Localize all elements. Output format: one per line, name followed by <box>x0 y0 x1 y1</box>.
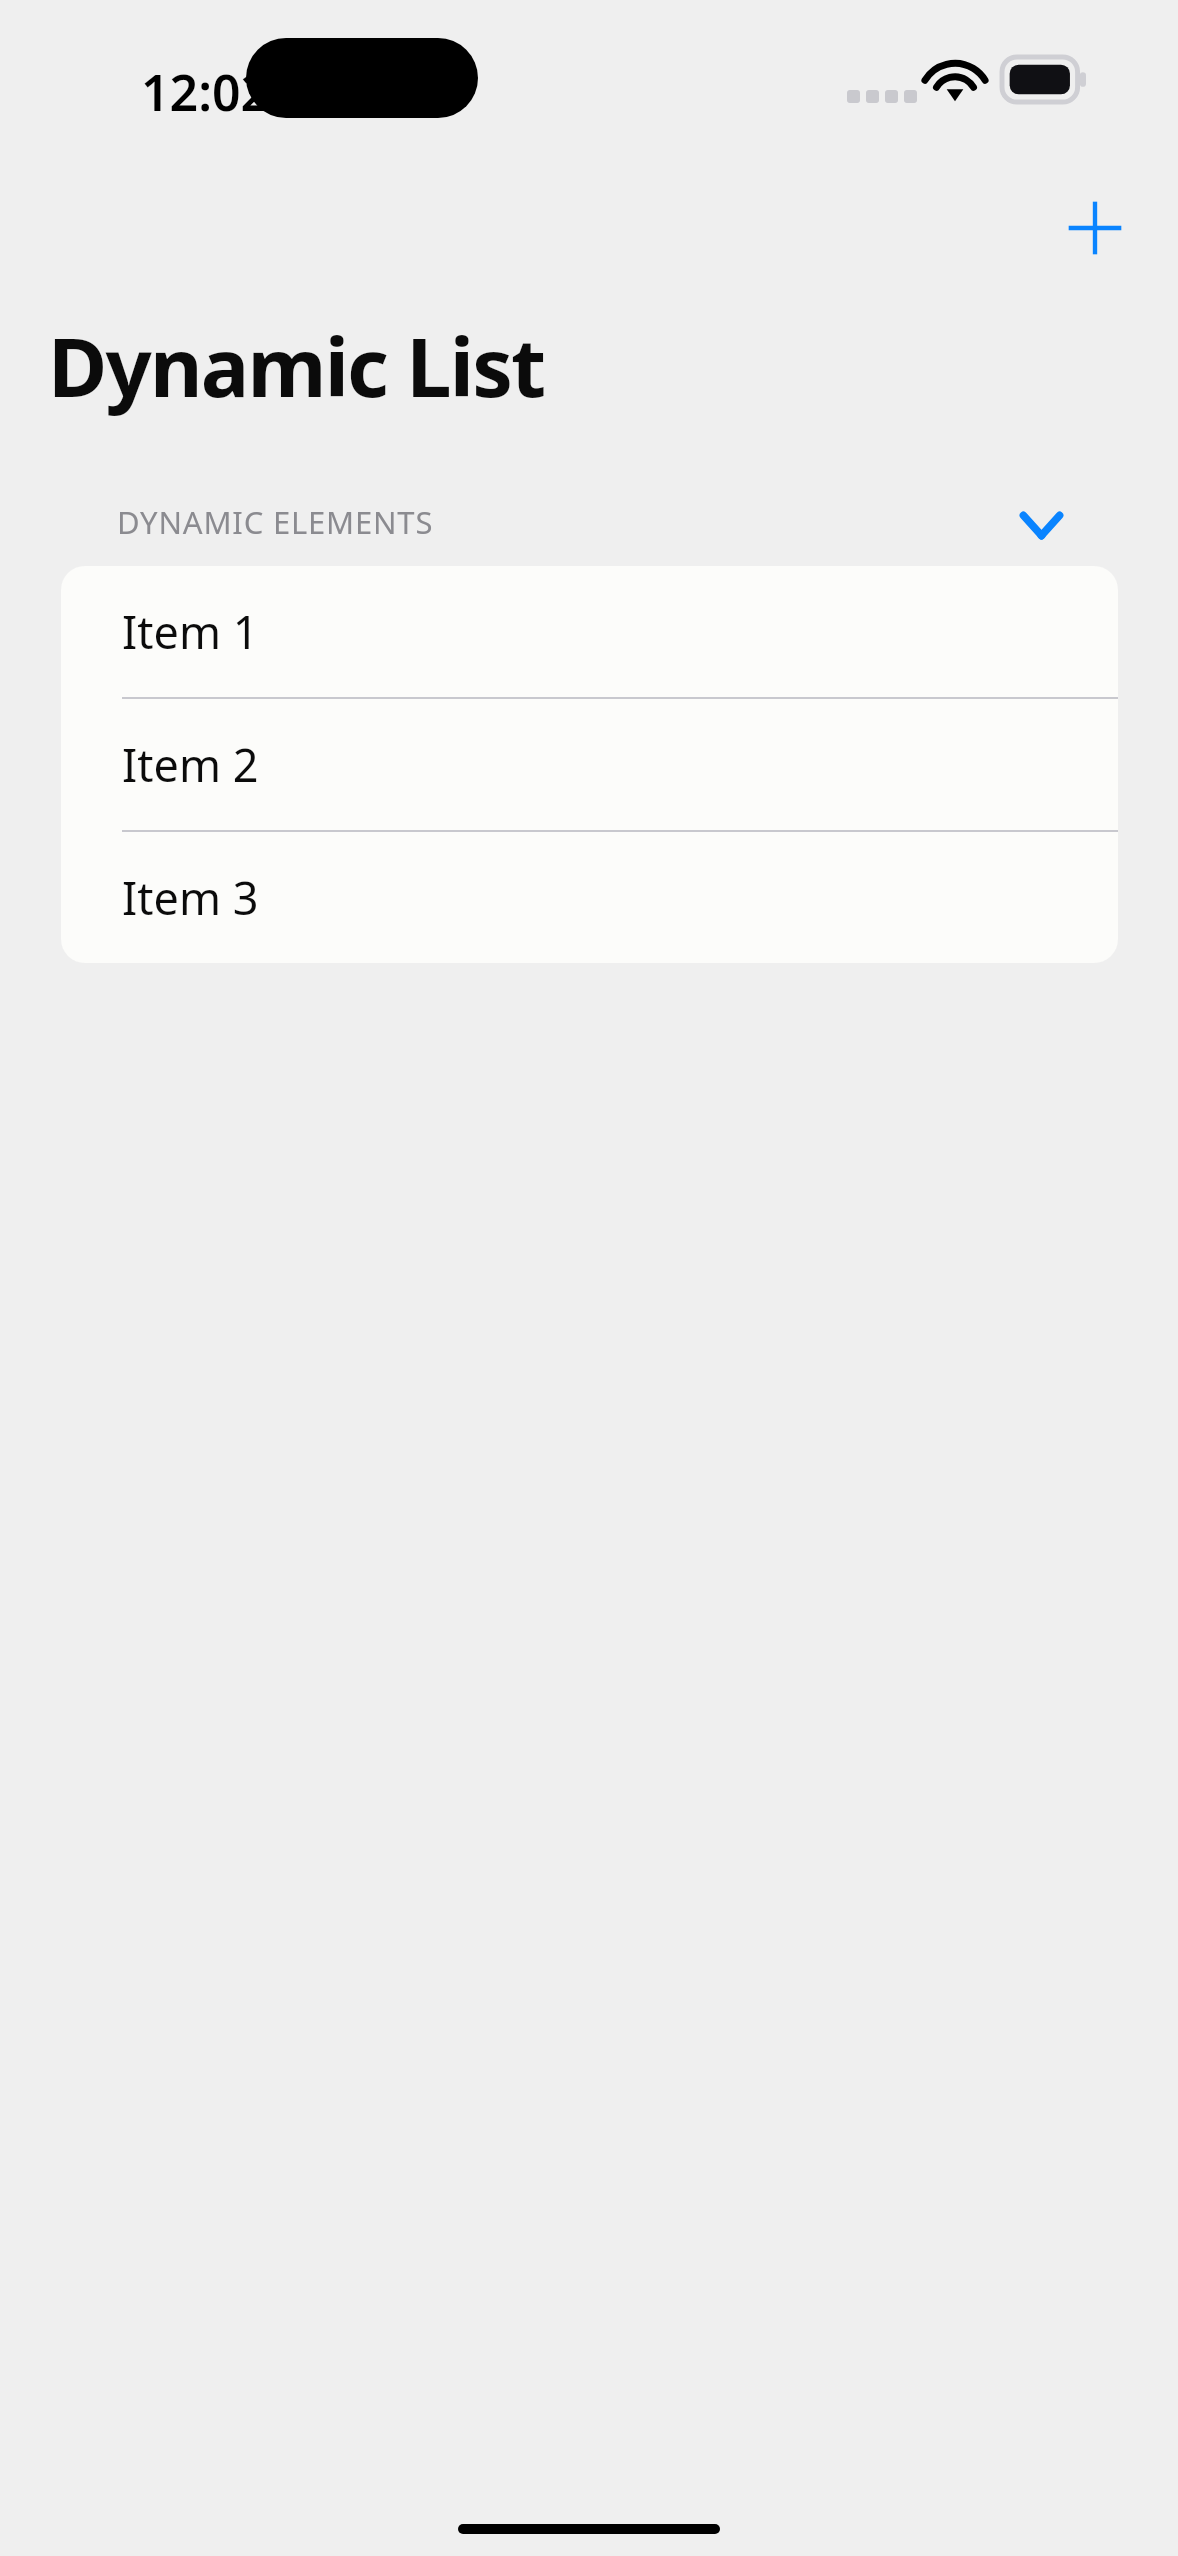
button[interactable]: Add item <box>1035 168 1155 288</box>
button[interactable]: Item 1 <box>61 566 1118 697</box>
button[interactable]: Item 2 <box>61 699 1118 830</box>
staticText: Item 1 <box>122 601 259 662</box>
staticText: DYNAMIC ELEMENTS <box>117 501 434 543</box>
staticText: Item 3 <box>122 867 259 928</box>
staticText: Dynamic List <box>48 310 545 420</box>
button[interactable]: Item 3 <box>61 832 1118 963</box>
staticText: Item 2 <box>122 734 259 795</box>
staticText: 12:02 <box>141 58 270 126</box>
button[interactable]: Collapse section <box>991 478 1091 572</box>
